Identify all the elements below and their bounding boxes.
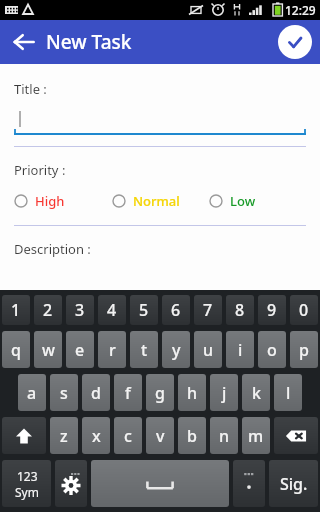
button[interactable]: a [18, 374, 46, 411]
staticText: f [125, 382, 131, 404]
staticText: q [11, 339, 21, 361]
staticText: 12:29 [285, 2, 316, 18]
button[interactable]: 8 [226, 295, 254, 325]
button[interactable]: k [242, 374, 270, 411]
staticText: 123 [17, 468, 38, 484]
button[interactable]: Period [233, 460, 265, 507]
button[interactable]: Space [91, 460, 229, 507]
staticText: x [92, 425, 101, 447]
staticText: j [222, 382, 227, 404]
button[interactable]: Keyboard settings [55, 460, 87, 507]
button[interactable]: Signature [269, 460, 318, 507]
staticText: r [109, 339, 116, 361]
button[interactable]: y [162, 331, 190, 368]
staticText: Normal [133, 192, 180, 210]
staticText: b [187, 425, 197, 447]
button[interactable]: Symbols [2, 460, 51, 507]
button[interactable]: m [242, 417, 270, 454]
staticText: 3 [75, 299, 85, 321]
staticText: Priority : [14, 161, 66, 179]
button[interactable]: o [258, 331, 286, 368]
button[interactable]: g [146, 374, 174, 411]
button[interactable]: i [226, 331, 254, 368]
button[interactable]: High [14, 192, 112, 210]
staticText: o [267, 339, 277, 361]
button[interactable]: 3 [66, 295, 94, 325]
staticText: 4 [107, 299, 117, 321]
button[interactable]: Normal [112, 192, 209, 210]
staticText: 1 [11, 299, 21, 321]
staticText: k [252, 382, 261, 404]
button[interactable]: Shift [2, 417, 46, 454]
staticText: y [172, 339, 181, 361]
button[interactable]: 9 [258, 295, 286, 325]
staticText: d [91, 382, 101, 404]
button[interactable]: 0 [290, 295, 318, 325]
button[interactable]: d [82, 374, 110, 411]
staticText: l [286, 382, 291, 404]
staticText: Description : [14, 240, 91, 258]
staticText: 0 [299, 299, 309, 321]
button[interactable]: e [66, 331, 94, 368]
staticText: z [60, 425, 68, 447]
staticText: s [60, 382, 68, 404]
button[interactable]: 4 [98, 295, 126, 325]
button[interactable]: Backspace [274, 417, 318, 454]
staticText: 2 [43, 299, 53, 321]
staticText: 9 [267, 299, 277, 321]
staticText: 7 [203, 299, 213, 321]
button[interactable]: c [114, 417, 142, 454]
button[interactable]: u [194, 331, 222, 368]
button[interactable]: v [146, 417, 174, 454]
staticText: n [219, 425, 230, 447]
button[interactable]: z [50, 417, 78, 454]
staticText: i [238, 339, 243, 361]
button[interactable]: Back [8, 26, 40, 58]
staticText: 5 [139, 299, 149, 321]
staticText: Title : [14, 80, 47, 98]
button[interactable]: q [2, 331, 30, 368]
button[interactable]: 2 [34, 295, 62, 325]
staticText: w [42, 339, 55, 361]
staticText: Sym [15, 484, 39, 500]
button[interactable]: Low [209, 192, 306, 210]
staticText: g [155, 382, 165, 404]
button[interactable]: 5 [130, 295, 158, 325]
button[interactable]: h [178, 374, 206, 411]
button[interactable]: l [274, 374, 302, 411]
button[interactable] [14, 110, 306, 136]
button[interactable]: f [114, 374, 142, 411]
button[interactable]: x [82, 417, 110, 454]
staticText: 6 [171, 299, 181, 321]
staticText: v [156, 425, 165, 447]
staticText: c [124, 425, 132, 447]
button[interactable]: w [34, 331, 62, 368]
staticText: Sig. [280, 473, 308, 495]
staticText: New Task [46, 29, 132, 55]
staticText: u [203, 339, 214, 361]
staticText: Low [230, 192, 256, 210]
button[interactable]: 7 [194, 295, 222, 325]
button[interactable]: r [98, 331, 126, 368]
button[interactable]: n [210, 417, 238, 454]
staticText: h [187, 382, 198, 404]
staticText: 8 [235, 299, 245, 321]
staticText: High [35, 192, 65, 210]
button[interactable]: b [178, 417, 206, 454]
button[interactable]: t [130, 331, 158, 368]
button[interactable]: j [210, 374, 238, 411]
staticText: m [248, 425, 264, 447]
staticText: a [27, 382, 37, 404]
staticText: e [75, 339, 85, 361]
staticText: t [141, 339, 148, 361]
button[interactable]: 6 [162, 295, 190, 325]
button[interactable]: 1 [2, 295, 30, 325]
staticText: p [299, 339, 309, 361]
button[interactable]: p [290, 331, 318, 368]
button[interactable]: s [50, 374, 78, 411]
button[interactable]: Save task [278, 25, 312, 59]
